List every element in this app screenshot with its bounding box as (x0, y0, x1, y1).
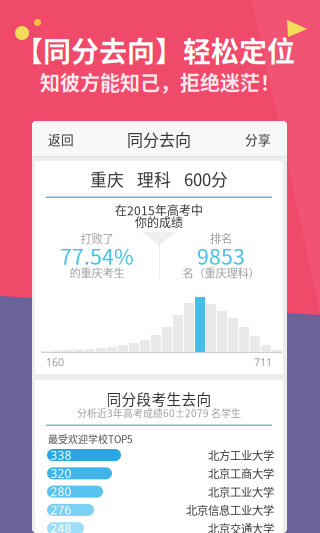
staticText: 北京工商大学 (208, 465, 274, 481)
staticText: 同分去向 (127, 127, 191, 151)
staticText: 276 (50, 502, 71, 518)
staticText: 重庆 (90, 167, 124, 191)
staticText: 160 (46, 355, 64, 369)
staticText: 的重庆考生 (69, 264, 124, 281)
staticText: 分析近3年高考成绩60±2079 名学生 (77, 406, 241, 420)
staticText: 北京信息工业大学 (186, 502, 274, 518)
staticText: 北京工业大学 (208, 483, 274, 500)
staticText: 【同分去向】轻松定位 (15, 30, 295, 70)
staticText: 最受欢迎学校TOP5 (48, 432, 133, 446)
staticText: 320 (50, 465, 71, 481)
staticText: 600分 (184, 167, 228, 191)
staticText: 在2015年高考中 (115, 201, 203, 219)
staticText: 排名 (210, 230, 232, 246)
button[interactable]: 分享 (235, 121, 281, 157)
button[interactable]: 返回 (38, 121, 84, 157)
staticText: 知彼方能知己，拒绝迷茫！ (40, 67, 280, 96)
staticText: 理科 (137, 167, 171, 191)
staticText: 分享 (245, 130, 271, 148)
staticText: 9853 (197, 240, 245, 271)
staticText: 711 (254, 355, 272, 369)
staticText: 北京交通大学 (208, 520, 274, 533)
staticText: 77.54% (60, 240, 134, 271)
staticText: 名（重庆理科） (182, 264, 259, 281)
staticText: 280 (50, 484, 71, 499)
staticText: 打败了 (80, 230, 113, 246)
staticText: 返回 (48, 130, 74, 148)
staticText: 北方工业大学 (208, 447, 274, 463)
staticText: 248 (50, 520, 71, 533)
staticText: 你的成绩 (135, 213, 183, 231)
staticText: 同分段考生去向 (106, 388, 211, 409)
staticText: 338 (50, 447, 71, 463)
